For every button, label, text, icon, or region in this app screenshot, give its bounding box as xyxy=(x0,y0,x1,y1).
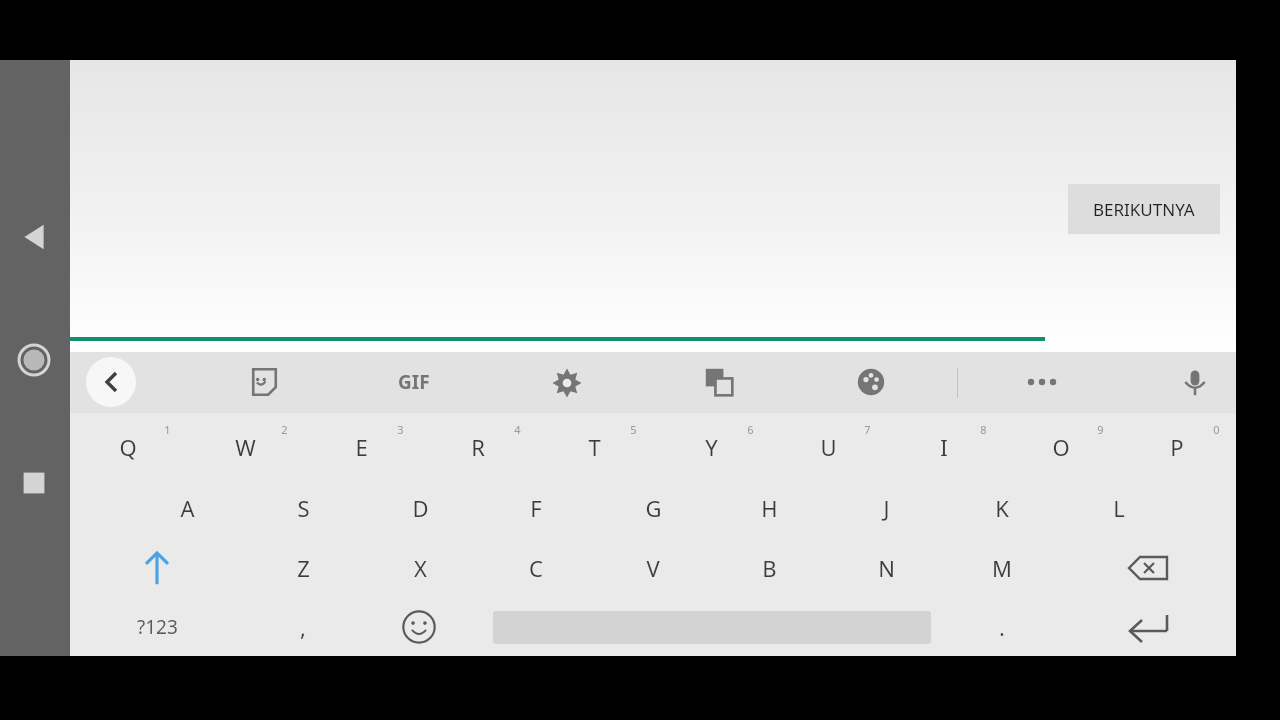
button[interactable]: P xyxy=(1121,418,1233,476)
button[interactable]: Q xyxy=(72,418,184,476)
button[interactable]: Z xyxy=(247,539,359,597)
staticText: 6 xyxy=(747,422,754,437)
button[interactable]: Translate xyxy=(697,360,741,404)
button[interactable]: I xyxy=(888,418,1000,476)
button[interactable]: R xyxy=(422,418,534,476)
staticText: N xyxy=(878,553,895,583)
staticText: L xyxy=(1113,493,1125,523)
button[interactable]: M xyxy=(946,539,1058,597)
staticText: H xyxy=(761,493,778,523)
staticText: 1 xyxy=(164,422,171,437)
button[interactable]: Home xyxy=(12,338,56,382)
staticText: Z xyxy=(297,553,310,583)
button[interactable]: Enter xyxy=(1092,599,1204,655)
button[interactable]: Themes xyxy=(849,360,893,404)
staticText: , xyxy=(300,612,306,642)
staticText: I xyxy=(940,432,948,462)
button[interactable]: V xyxy=(597,539,709,597)
staticText: 9 xyxy=(1097,422,1104,437)
button[interactable]: Voice input xyxy=(1173,360,1217,404)
button[interactable]: BERIKUTNYA xyxy=(1068,184,1220,234)
button[interactable]: S xyxy=(247,479,359,537)
staticText: S xyxy=(297,493,310,523)
button[interactable]: Shift xyxy=(101,539,213,597)
staticText: V xyxy=(646,553,660,583)
staticText: J xyxy=(883,493,890,523)
button[interactable]: E xyxy=(305,418,417,476)
staticText: P xyxy=(1170,432,1184,462)
button[interactable]: H xyxy=(713,479,825,537)
button[interactable]: Y xyxy=(655,418,767,476)
button[interactable]: Stickers xyxy=(241,360,285,404)
button[interactable]: Settings xyxy=(545,361,589,405)
staticText: Q xyxy=(119,432,137,462)
button[interactable]: O xyxy=(1005,418,1117,476)
button[interactable]: N xyxy=(830,539,942,597)
button[interactable]: Recent apps xyxy=(14,463,54,503)
button[interactable]: A xyxy=(131,479,243,537)
staticText: G xyxy=(645,493,662,523)
staticText: U xyxy=(820,432,837,462)
button[interactable]: T xyxy=(538,418,650,476)
staticText: A xyxy=(180,493,195,523)
button[interactable]: G xyxy=(597,479,709,537)
button[interactable]: Back xyxy=(10,215,58,259)
button[interactable]: GIF xyxy=(380,364,448,400)
button[interactable]: , xyxy=(247,599,359,655)
staticText: D xyxy=(412,493,429,523)
button[interactable]: More options xyxy=(1018,362,1066,402)
staticText: M xyxy=(992,553,1012,583)
staticText: W xyxy=(235,432,256,462)
button[interactable]: F xyxy=(480,479,592,537)
staticText: E xyxy=(355,432,368,462)
staticText: C xyxy=(529,553,543,583)
button[interactable]: B xyxy=(713,539,825,597)
staticText: T xyxy=(588,432,601,462)
staticText: 4 xyxy=(514,422,521,437)
button[interactable]: U xyxy=(772,418,884,476)
button[interactable]: K xyxy=(946,479,1058,537)
staticText: 7 xyxy=(864,422,871,437)
staticText: 3 xyxy=(397,422,404,437)
staticText: GIF xyxy=(398,369,430,395)
button[interactable]: Close toolbar xyxy=(86,357,136,407)
button[interactable]: C xyxy=(480,539,592,597)
staticText: X xyxy=(414,553,427,583)
button[interactable]: ?123 xyxy=(97,599,217,655)
staticText: 5 xyxy=(630,422,637,437)
staticText: R xyxy=(471,432,485,462)
staticText: Y xyxy=(705,432,718,462)
staticText: BERIKUTNYA xyxy=(1093,198,1195,221)
staticText: F xyxy=(530,493,542,523)
button[interactable]: L xyxy=(1063,479,1175,537)
staticText: 8 xyxy=(980,422,987,437)
button[interactable]: J xyxy=(830,479,942,537)
staticText: 0 xyxy=(1213,422,1220,437)
button[interactable]: W xyxy=(189,418,301,476)
staticText: 2 xyxy=(281,422,288,437)
staticText: B xyxy=(762,553,777,583)
button[interactable]: Backspace xyxy=(1092,539,1204,597)
button[interactable]: X xyxy=(364,539,476,597)
staticText: ?123 xyxy=(137,614,178,640)
staticText: K xyxy=(995,493,1009,523)
button[interactable]: Emoji xyxy=(391,599,447,655)
staticText: O xyxy=(1052,432,1070,462)
button[interactable]: D xyxy=(364,479,476,537)
staticText: . xyxy=(999,612,1005,642)
button[interactable]: . xyxy=(946,599,1058,655)
